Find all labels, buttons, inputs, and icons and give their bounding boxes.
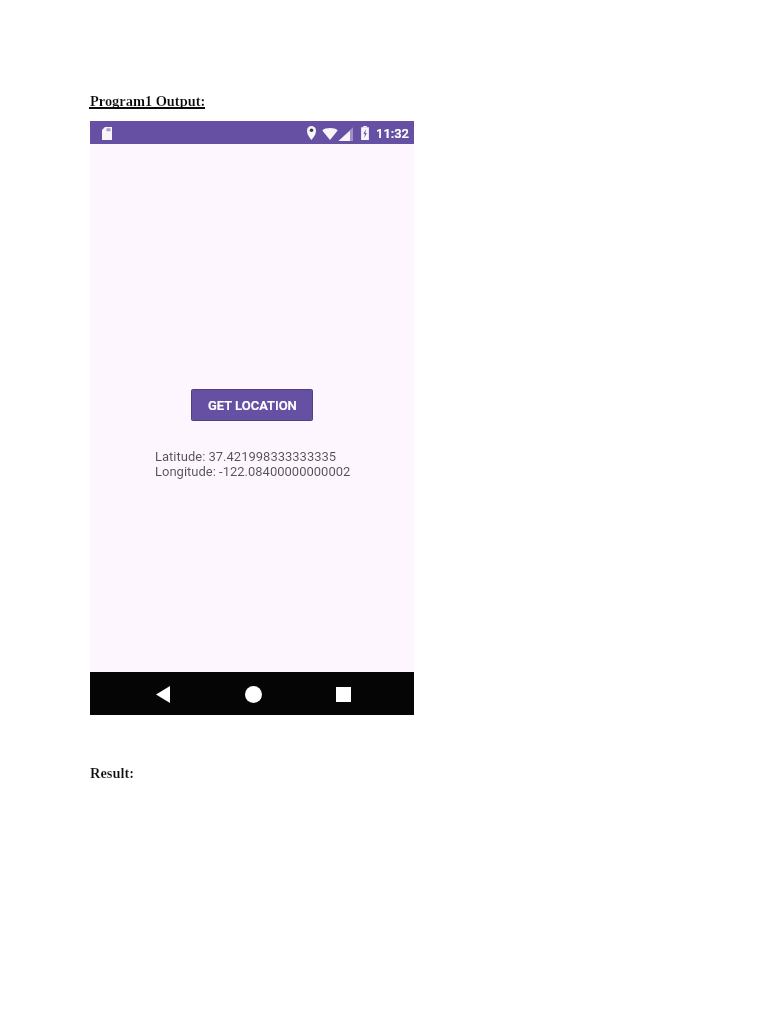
button[interactable]: Home xyxy=(231,672,275,715)
staticText: Longitude: -122.08400000000002 xyxy=(155,464,351,479)
button[interactable]: Back xyxy=(141,672,185,715)
button[interactable]: Recent apps xyxy=(321,672,365,715)
button[interactable]: GET LOCATION xyxy=(192,390,312,420)
staticText: 11:32 xyxy=(376,126,410,141)
staticText: Result: xyxy=(90,765,134,781)
staticText: Program1 Output: xyxy=(90,93,206,109)
staticText: Latitude: 37.421998333333335 xyxy=(155,449,337,464)
staticText: GET LOCATION xyxy=(208,398,297,413)
